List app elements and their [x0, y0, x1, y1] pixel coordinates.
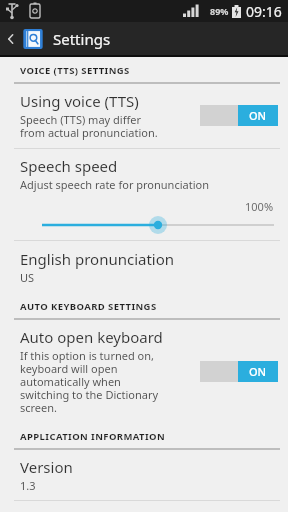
staticText: Using voice (TTS)	[20, 91, 139, 111]
button[interactable]: English pronunciation	[0, 241, 288, 293]
button[interactable]: Back	[0, 22, 22, 55]
staticText: ON	[249, 108, 267, 123]
staticText: Speech speed	[20, 156, 118, 176]
staticText: 1.3	[20, 478, 36, 493]
button[interactable]: Version	[0, 450, 288, 500]
staticText: English pronunciation	[20, 249, 175, 269]
staticText: 89%	[210, 5, 229, 17]
staticText: 09:16	[246, 2, 282, 21]
staticText: VOICE (TTS) SETTINGS	[20, 64, 130, 77]
button[interactable]: Using voice (TTS)	[0, 84, 288, 148]
staticText: ON	[249, 364, 267, 379]
button[interactable]: ON	[200, 105, 278, 126]
staticText: Settings	[53, 29, 111, 49]
staticText: Auto open keyboard	[20, 327, 163, 347]
staticText: Speech (TTS) may differ from actual pron…	[20, 112, 158, 140]
button[interactable]: Auto open keyboard	[0, 320, 288, 423]
staticText: 100%	[245, 199, 274, 214]
staticText: If this option is turned on, keyboard wi…	[20, 348, 159, 415]
button[interactable]: Speech speed	[0, 149, 288, 240]
staticText: AUTO KEYBOARD SETTINGS	[20, 300, 157, 313]
button[interactable]: ON	[200, 361, 278, 382]
staticText: Version	[20, 457, 73, 477]
staticText: Adjust speech rate for pronunciation	[20, 177, 209, 192]
staticText: APPLICATION INFORMATION	[20, 430, 166, 443]
staticText: US	[20, 270, 35, 285]
